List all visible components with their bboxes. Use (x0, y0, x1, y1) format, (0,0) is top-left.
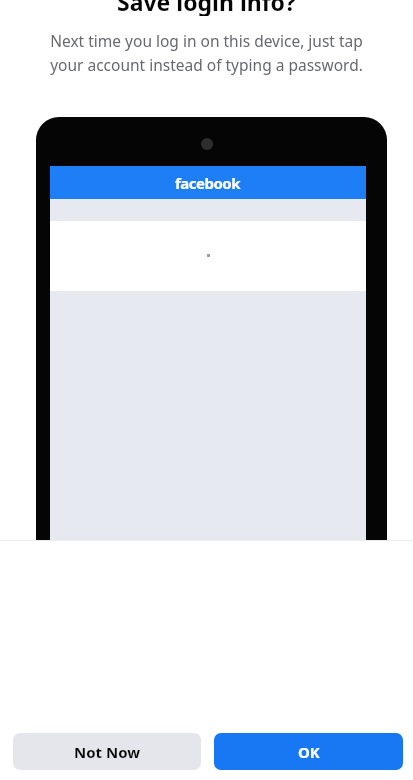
staticText: Next time you log in on this device, jus… (50, 30, 363, 75)
staticText: facebook (175, 173, 241, 193)
button[interactable]: OK (214, 733, 403, 770)
staticText: OK (298, 742, 320, 762)
staticText: Not Now (74, 742, 141, 762)
staticText: Save login info? (117, 0, 296, 16)
button[interactable]: Not Now (13, 733, 201, 770)
